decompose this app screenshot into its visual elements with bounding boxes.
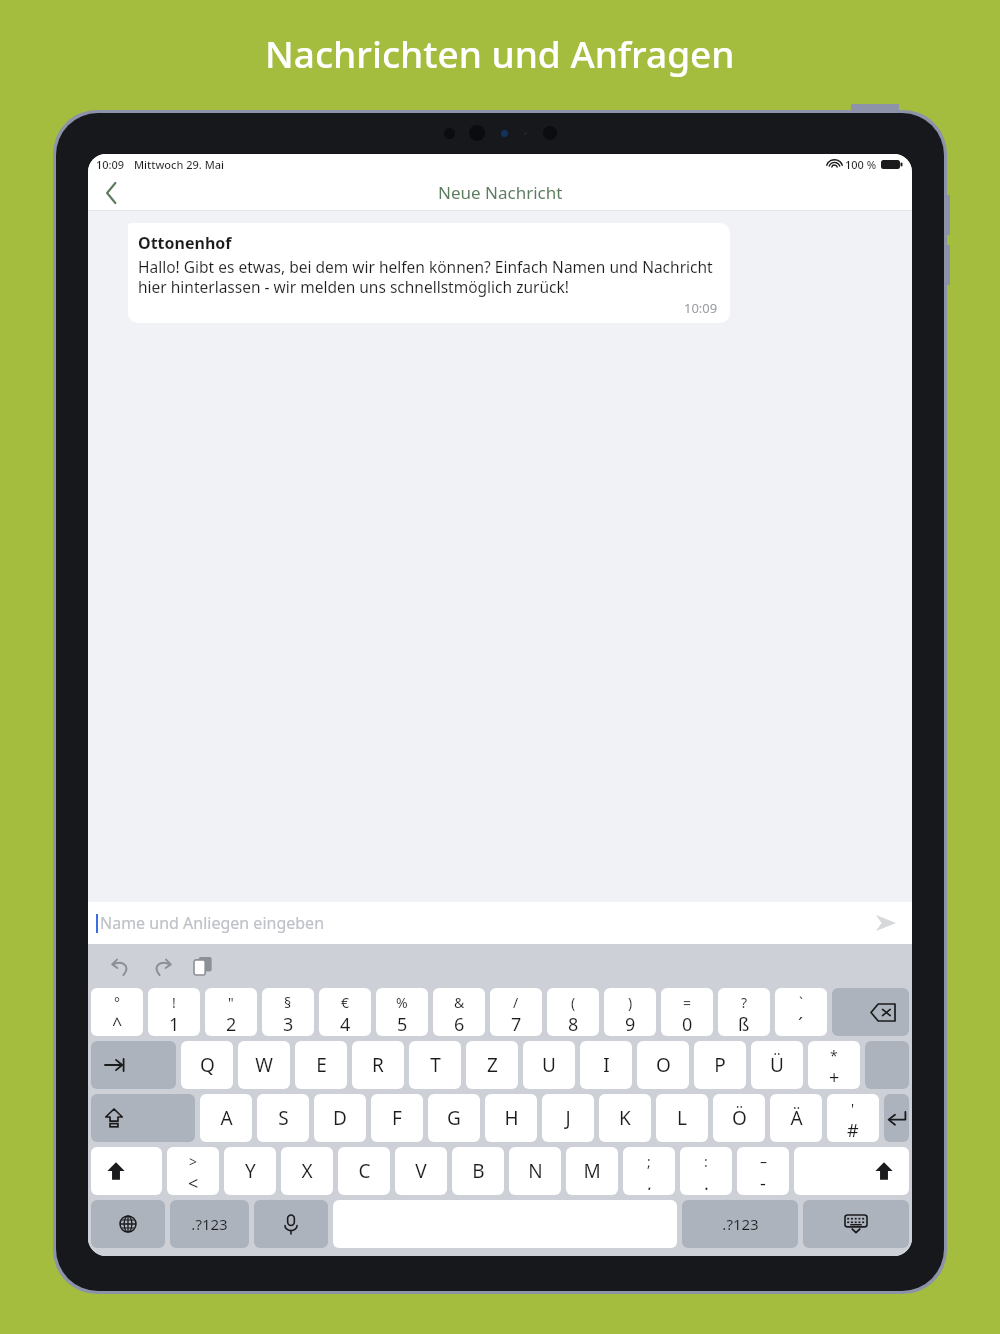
button[interactable]: ( [547, 988, 599, 1036]
button[interactable]: M [566, 1147, 618, 1195]
button[interactable]: Löschen [832, 988, 909, 1036]
button[interactable]: Ö [713, 1094, 765, 1142]
button[interactable]: I [580, 1041, 632, 1089]
button[interactable]: U [523, 1041, 575, 1089]
other: Löschen [832, 988, 909, 1036]
staticText: . [704, 1171, 709, 1190]
button[interactable]: Feststelltaste [91, 1094, 195, 1142]
staticText: - [760, 1171, 766, 1190]
button[interactable]: § [262, 988, 314, 1036]
button[interactable]: B [452, 1147, 504, 1195]
button[interactable]: K [599, 1094, 651, 1142]
button[interactable]: P [694, 1041, 746, 1089]
button[interactable]: D [314, 1094, 366, 1142]
button[interactable]: = [661, 988, 713, 1036]
button[interactable]: A [200, 1094, 252, 1142]
button[interactable]: Ä [770, 1094, 822, 1142]
button[interactable]: / [490, 988, 542, 1036]
button[interactable]: ? [718, 988, 770, 1036]
staticText: ´ [798, 1012, 804, 1031]
button[interactable] [865, 1041, 909, 1089]
staticText: % [396, 993, 408, 1012]
button[interactable]: Z [466, 1041, 518, 1089]
staticText: ; [647, 1152, 651, 1171]
button[interactable]: Umschalttaste rechts [794, 1147, 909, 1195]
button[interactable]: ` [775, 988, 827, 1036]
button[interactable]: ° [91, 988, 143, 1036]
staticText: .?123 [722, 1214, 759, 1234]
staticText: – [760, 1152, 767, 1171]
button[interactable]: Eingabe [884, 1094, 909, 1142]
staticText: 0 [682, 1012, 693, 1031]
button[interactable]: X [281, 1147, 333, 1195]
staticText: ^ [112, 1012, 123, 1031]
button[interactable]: ! [148, 988, 200, 1036]
staticText: J [565, 1105, 571, 1131]
button[interactable]: F [371, 1094, 423, 1142]
button[interactable]: W [238, 1041, 290, 1089]
staticText: C [358, 1158, 371, 1184]
button[interactable]: ) [604, 988, 656, 1036]
button[interactable]: T [409, 1041, 461, 1089]
button[interactable]: .?123 [170, 1200, 249, 1248]
button[interactable]: N [509, 1147, 561, 1195]
button[interactable]: Y [224, 1147, 276, 1195]
button[interactable]: Sprache wechseln [91, 1200, 165, 1248]
staticText: .?123 [191, 1214, 228, 1234]
staticText: U [542, 1052, 556, 1078]
staticText: E [316, 1052, 327, 1078]
staticText: 3 [283, 1012, 294, 1031]
other: Tabulator [105, 1041, 176, 1089]
button[interactable]: Zurück [88, 174, 134, 211]
button[interactable]: : [680, 1147, 732, 1195]
button[interactable]: G [428, 1094, 480, 1142]
button[interactable]: " [205, 988, 257, 1036]
staticText: / [513, 993, 519, 1012]
button[interactable]: J [542, 1094, 594, 1142]
button[interactable]: & [433, 988, 485, 1036]
staticText: ` [799, 993, 803, 1012]
button[interactable]: .?123 [682, 1200, 798, 1248]
button[interactable]: Diktieren [254, 1200, 328, 1248]
button[interactable]: V [395, 1147, 447, 1195]
button[interactable]: – [737, 1147, 789, 1195]
staticText: A [220, 1105, 233, 1131]
button[interactable]: R [352, 1041, 404, 1089]
button[interactable]: Rückgängig [104, 949, 138, 983]
staticText: N [528, 1158, 543, 1184]
button[interactable]: Tastatur ausblenden [803, 1200, 909, 1248]
staticText: ' [851, 1099, 855, 1118]
button[interactable]: O [637, 1041, 689, 1089]
button[interactable]: C [338, 1147, 390, 1195]
button[interactable]: Senden [872, 909, 900, 937]
other: Eingabe [884, 1094, 909, 1142]
button[interactable]: % [376, 988, 428, 1036]
button[interactable]: L [656, 1094, 708, 1142]
staticText: Neue Nachricht [438, 181, 563, 204]
staticText: R [372, 1052, 384, 1078]
button[interactable]: Ü [751, 1041, 803, 1089]
button[interactable]: > [167, 1147, 219, 1195]
button[interactable]: Ottonenhof [128, 223, 730, 323]
button[interactable]: H [485, 1094, 537, 1142]
button[interactable]: Q [181, 1041, 233, 1089]
other: Diktieren [254, 1200, 328, 1248]
button[interactable]: Name und Anliegen eingeben [98, 912, 872, 934]
button[interactable]: S [257, 1094, 309, 1142]
staticText: D [333, 1105, 347, 1131]
button[interactable]: ; [623, 1147, 675, 1195]
button[interactable]: € [319, 988, 371, 1036]
staticText: & [454, 993, 465, 1012]
button[interactable]: Wiederholen [145, 949, 179, 983]
button[interactable]: * [808, 1041, 860, 1089]
other: Umschalttaste [107, 1147, 162, 1195]
staticText: " [228, 993, 234, 1012]
staticText: K [619, 1105, 631, 1131]
button[interactable]: Umschalttaste [91, 1147, 162, 1195]
staticText: Q [200, 1052, 215, 1078]
button[interactable]: ' [827, 1094, 879, 1142]
button[interactable]: E [295, 1041, 347, 1089]
button[interactable]: Tabulator [91, 1041, 176, 1089]
button[interactable]: Einfügen [186, 949, 220, 983]
